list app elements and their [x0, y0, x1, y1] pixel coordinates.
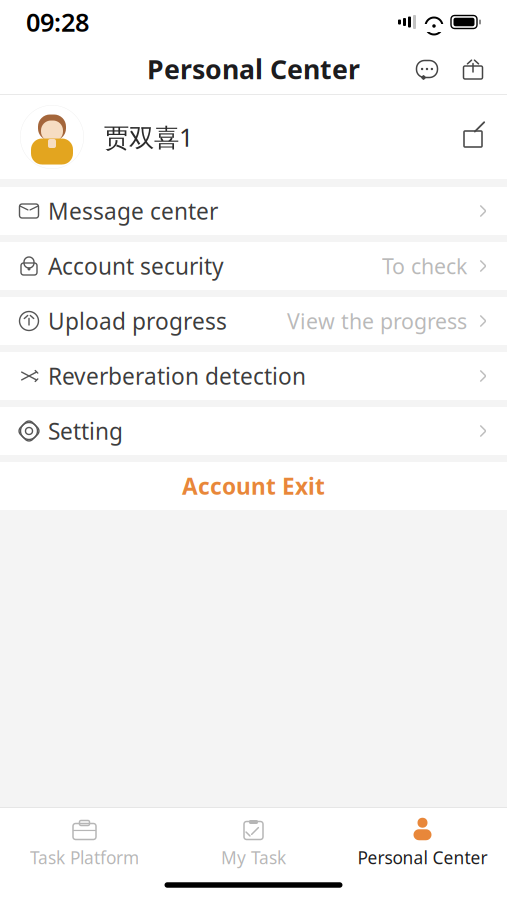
button[interactable]: Messages [409, 51, 445, 87]
staticText: Upload progress [48, 306, 227, 336]
staticText: Personal Center [147, 51, 360, 87]
staticText: Account security [48, 251, 224, 281]
button[interactable]: My Task [169, 809, 338, 869]
button[interactable]: Account Exit [0, 462, 507, 510]
button[interactable]: Personal Center [338, 809, 507, 869]
staticText: Message center [48, 196, 218, 226]
button[interactable]: Share [455, 51, 491, 87]
staticText: To check [382, 252, 467, 280]
staticText: Personal Center [357, 846, 487, 869]
button[interactable]: Task Platform [0, 809, 169, 869]
button[interactable]: Message center [0, 187, 507, 235]
staticText: View the progress [287, 307, 467, 335]
staticText: 贾双喜1 [104, 120, 193, 154]
staticText: Setting [48, 416, 123, 446]
button[interactable]: 贾双喜1 [0, 95, 507, 179]
button[interactable]: Setting [0, 407, 507, 455]
button[interactable]: Account security [0, 242, 507, 290]
button[interactable]: Upload progress [0, 297, 507, 345]
staticText: Reverberation detection [48, 361, 306, 391]
button[interactable]: Reverberation detection [0, 352, 507, 400]
staticText: 09:28 [26, 5, 89, 39]
staticText: Account Exit [182, 471, 325, 501]
staticText: Task Platform [30, 846, 139, 869]
staticText: My Task [221, 846, 286, 869]
